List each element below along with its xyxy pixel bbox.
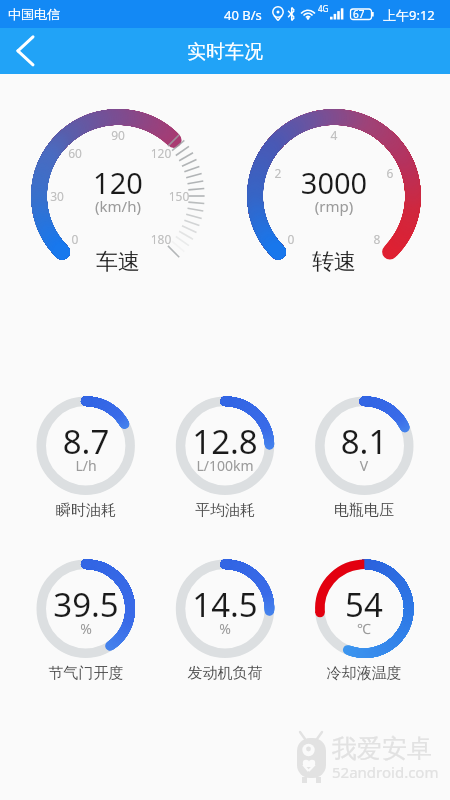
staticText: 电瓶电压 [284, 501, 444, 520]
staticText: 150 [159, 188, 199, 204]
staticText: 节气门开度 [6, 664, 166, 683]
staticText: ℃ [284, 619, 444, 638]
staticText: % [145, 619, 305, 638]
staticText: 40 B/s [224, 6, 262, 24]
staticText: 冷却液温度 [284, 664, 444, 683]
button[interactable]: Back [0, 28, 41, 72]
staticText: 14.5 [145, 582, 305, 627]
staticText: L/h [6, 456, 166, 475]
staticText: 8.1 [284, 419, 444, 464]
staticText: 中国电信 [8, 6, 60, 22]
staticText: 3000 [254, 163, 414, 202]
staticText: 实时车况 [145, 40, 305, 64]
staticText: 30 [37, 188, 77, 204]
staticText: 60 [55, 145, 95, 161]
staticText: 52android.com [332, 762, 439, 782]
staticText: 90 [98, 127, 138, 143]
staticText: 我爱安卓 [332, 733, 432, 764]
staticText: 54 [284, 582, 444, 627]
staticText: 0 [271, 231, 311, 247]
staticText: 120 [141, 145, 181, 161]
staticText: 0 [55, 231, 95, 247]
staticText: (rmp) [254, 196, 414, 216]
staticText: 2 [258, 165, 298, 181]
staticText: 8 [357, 231, 397, 247]
staticText: 4G [318, 3, 329, 14]
staticText: 180 [141, 231, 181, 247]
staticText: 发动机负荷 [145, 664, 305, 683]
staticText: 瞬时油耗 [6, 501, 166, 520]
staticText: L/100km [145, 456, 305, 475]
staticText: 上午9:12 [383, 6, 435, 24]
staticText: 转速 [254, 248, 414, 276]
staticText: V [284, 456, 444, 475]
staticText: 39.5 [6, 582, 166, 627]
staticText: 120 [38, 163, 198, 202]
staticText: 6 [370, 165, 410, 181]
staticText: (km/h) [38, 196, 198, 216]
staticText: 车速 [38, 248, 198, 276]
staticText: 平均油耗 [145, 501, 305, 520]
staticText: % [6, 619, 166, 638]
staticText: 12.8 [145, 419, 305, 464]
staticText: 4 [314, 127, 354, 143]
staticText: 8.7 [6, 419, 166, 464]
staticText: 67 [353, 7, 365, 21]
